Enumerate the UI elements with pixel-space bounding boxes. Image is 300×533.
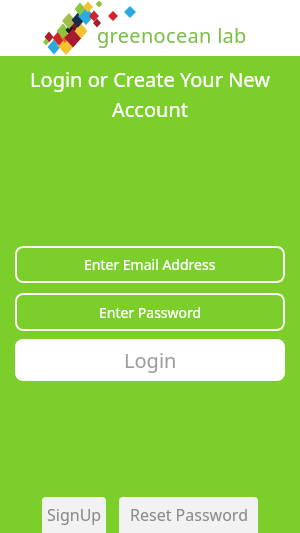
staticText: greenocean lab — [97, 22, 247, 49]
staticText: SignUp — [47, 504, 102, 526]
button[interactable]: SignUp — [42, 497, 106, 533]
staticText: Reset Password — [130, 504, 248, 526]
staticText: Login — [124, 347, 177, 374]
staticText: Enter Password — [99, 303, 202, 322]
staticText: Enter Email Address — [84, 255, 216, 274]
button[interactable]: Enter Password — [15, 293, 285, 331]
button[interactable]: Reset Password — [119, 497, 258, 533]
staticText: Login or Create Your New Account — [0, 66, 300, 123]
button[interactable]: Enter Email Address — [15, 246, 285, 283]
button[interactable]: Login — [15, 339, 285, 381]
